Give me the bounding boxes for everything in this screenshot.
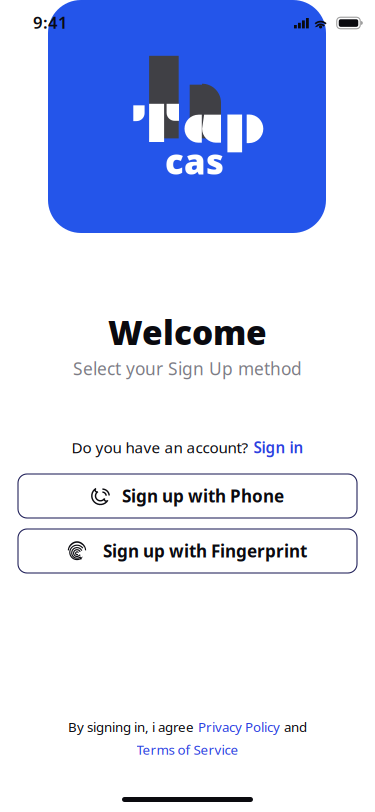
staticText: Do you have an account? (71, 437, 248, 458)
button[interactable]: Terms of Service (136, 741, 238, 758)
staticText: Welcome (108, 310, 267, 354)
staticText: Privacy Policy (198, 718, 280, 736)
staticText: Sign up with Phone (122, 484, 284, 508)
staticText: Terms of Service (136, 741, 238, 758)
staticText: and (284, 718, 307, 736)
button[interactable]: Sign up with Phone (18, 474, 357, 518)
staticText: Select your Sign Up method (73, 357, 302, 380)
button[interactable]: Sign up with Fingerprint (18, 529, 357, 573)
button[interactable]: Privacy Policy (198, 718, 280, 736)
staticText: cas (165, 138, 224, 184)
staticText: Sign up with Fingerprint (103, 539, 307, 563)
staticText: By signing in, i agree (68, 718, 194, 736)
button[interactable]: Sign in (253, 437, 303, 458)
staticText: 9:41 (33, 11, 68, 34)
staticText: Sign in (253, 437, 303, 458)
